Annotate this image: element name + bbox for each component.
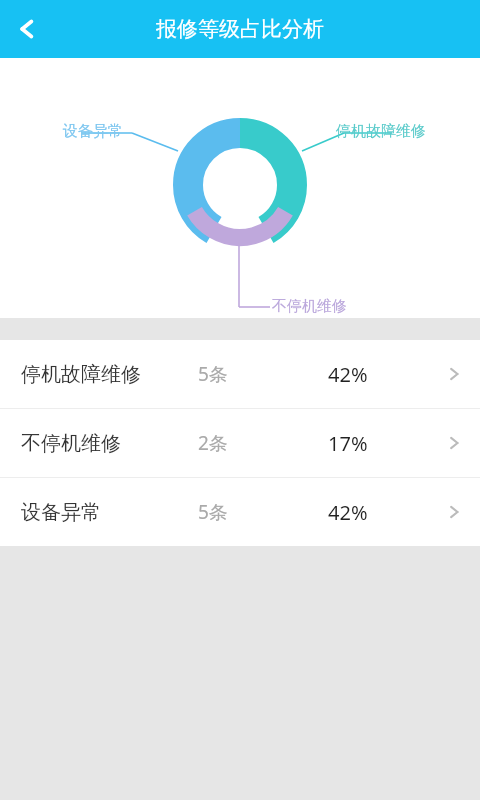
staticText: 不停机维修 — [21, 431, 121, 456]
button[interactable]: 不停机维修 — [0, 409, 480, 477]
button[interactable]: 停机故障维修 — [0, 340, 480, 408]
staticText: 设备异常 — [21, 500, 101, 525]
staticText: 17% — [328, 430, 368, 457]
button[interactable]: Back — [0, 0, 54, 58]
staticText: 设备异常 — [63, 122, 123, 141]
button[interactable]: 设备异常 — [0, 478, 480, 546]
staticText: 不停机维修 — [272, 297, 347, 316]
staticText: 42% — [328, 361, 368, 388]
staticText: 5条 — [198, 499, 228, 525]
staticText: 2条 — [198, 430, 228, 456]
staticText: 停机故障维修 — [21, 362, 141, 387]
staticText: 停机故障维修 — [336, 122, 426, 141]
staticText: 5条 — [198, 361, 228, 387]
staticText: 42% — [328, 499, 368, 526]
staticText: 报修等级占比分析 — [156, 16, 324, 42]
